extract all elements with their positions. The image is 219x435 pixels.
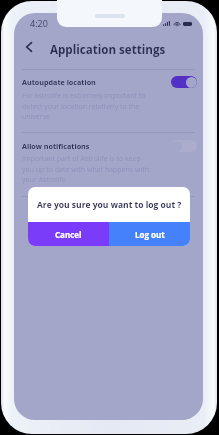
staticText: Important part of Astrolife is to keep y… (22, 154, 150, 184)
staticText: Log out (135, 229, 165, 240)
button[interactable]: Back (21, 39, 37, 55)
staticText: Are you sure you want to log out ? (37, 199, 182, 211)
staticText: 4:20 (30, 17, 48, 29)
staticText: Cancel (55, 229, 82, 240)
button[interactable]: Autoupdate location on (171, 76, 197, 88)
button[interactable]: Cancel (28, 222, 109, 246)
staticText: Allow notifications (22, 141, 90, 151)
button[interactable]: Allow notifications off (171, 140, 197, 152)
staticText: For astrolife is extremely important to … (22, 91, 150, 121)
button[interactable] (14, 133, 203, 195)
staticText: Autoupdate location (22, 77, 96, 87)
button[interactable] (14, 70, 203, 132)
staticText: Application settings (50, 42, 166, 58)
button[interactable]: Log out (109, 222, 190, 246)
